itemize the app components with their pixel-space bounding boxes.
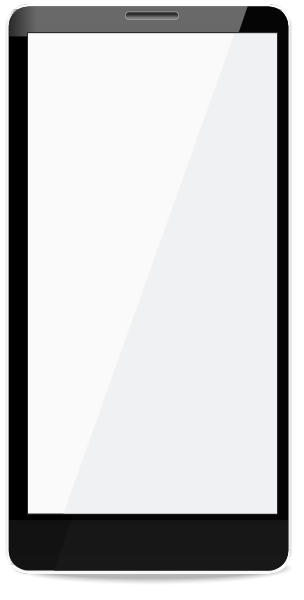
button[interactable]: Smartphone device mockup illustration — [0, 0, 304, 600]
